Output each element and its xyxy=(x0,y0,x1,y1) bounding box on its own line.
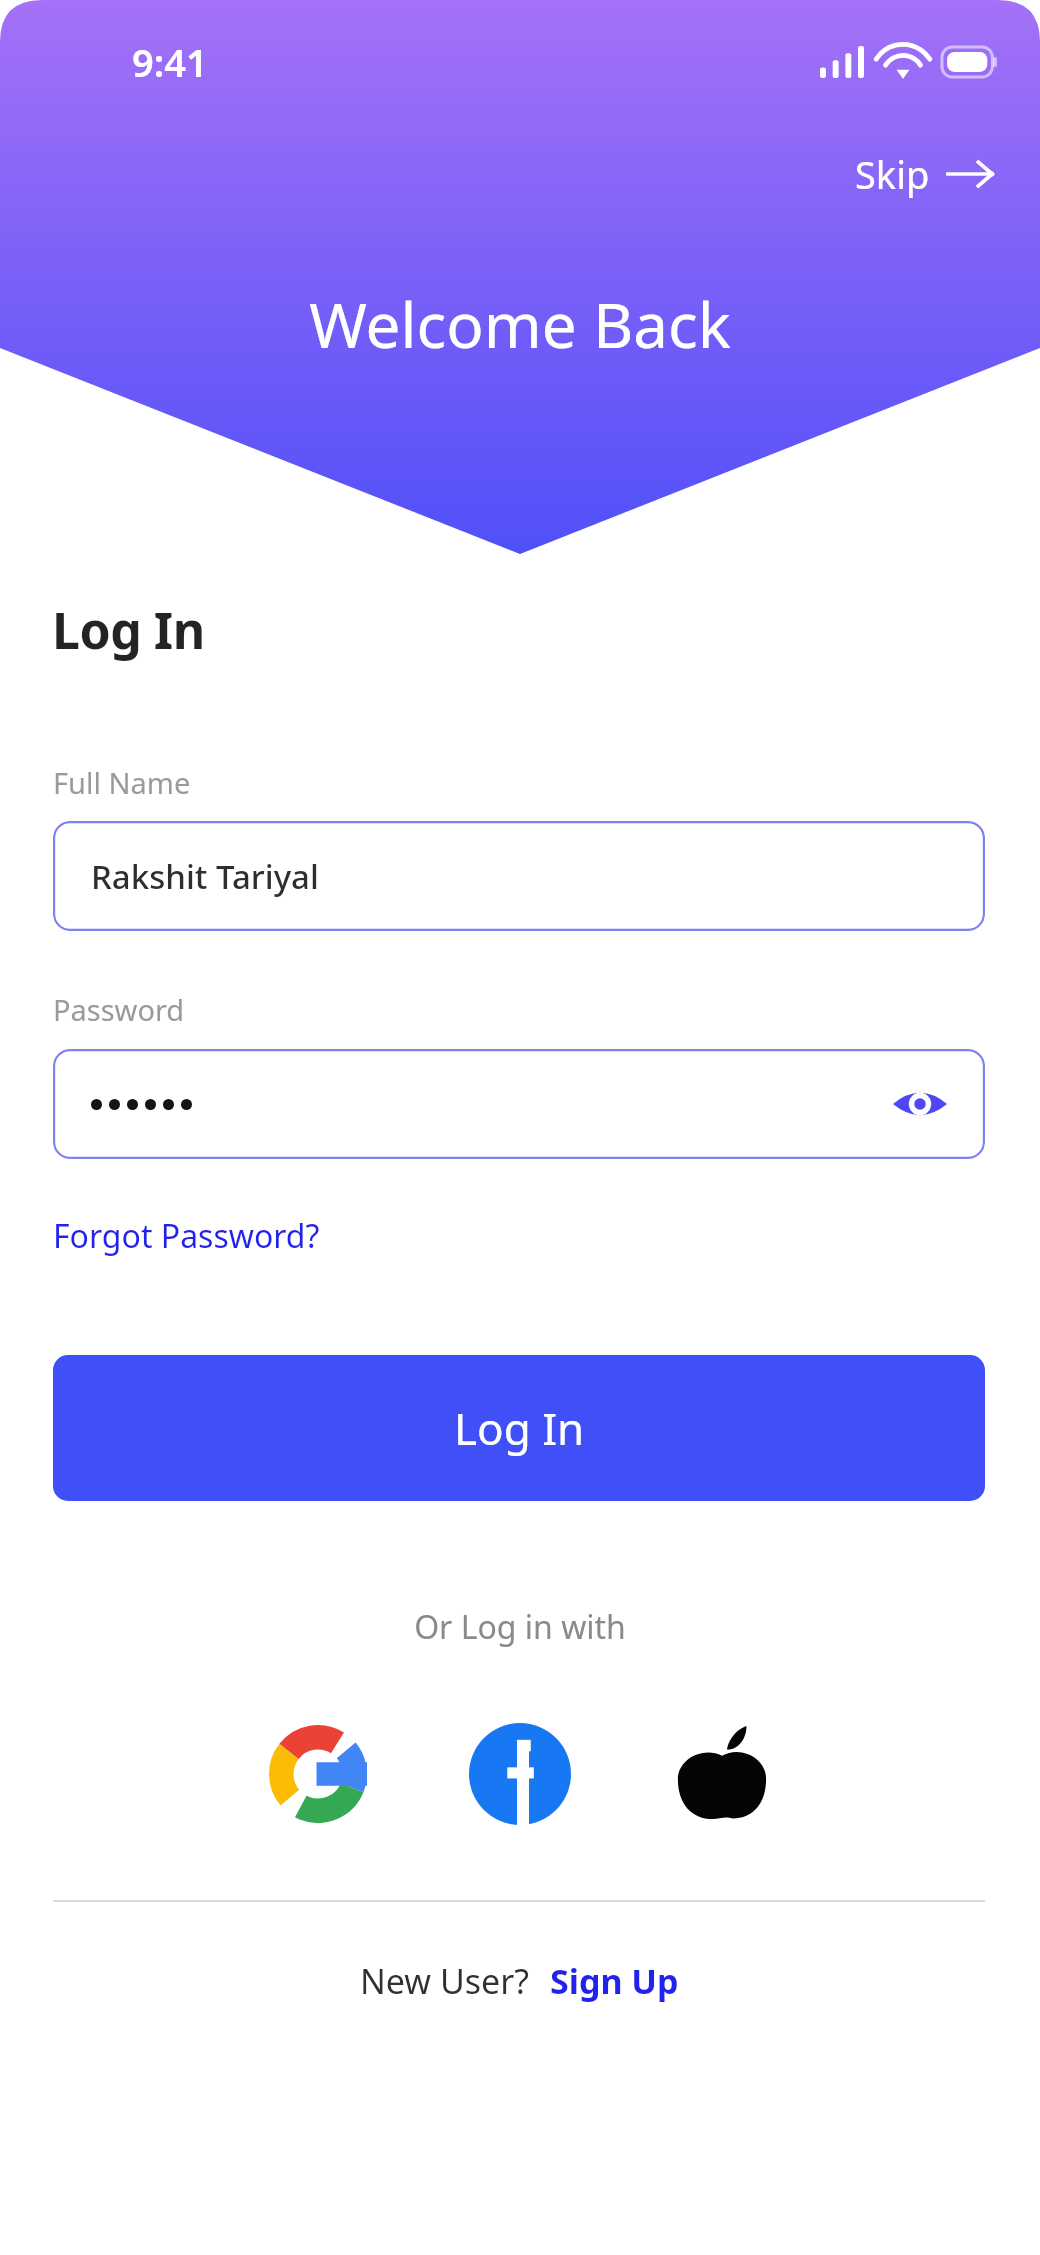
staticText: Forgot Password? xyxy=(53,1214,320,1258)
staticText: Welcome Back xyxy=(309,282,731,366)
button[interactable]: Sign in with Google xyxy=(256,1712,380,1836)
staticText: 9:41 xyxy=(132,36,208,88)
staticText: Full Name xyxy=(53,763,191,802)
staticText: Sign Up xyxy=(550,1958,679,2004)
button[interactable]: Skip xyxy=(849,140,1000,208)
button[interactable]: Show password xyxy=(883,1067,957,1141)
staticText: Skip xyxy=(855,148,930,200)
staticText: New User? xyxy=(360,1958,530,2004)
staticText: Or Log in with xyxy=(414,1605,626,1649)
button[interactable]: Forgot Password? xyxy=(49,1210,324,1262)
staticText: Password xyxy=(53,990,185,1029)
button[interactable]: Show password xyxy=(53,1049,985,1159)
staticText: Rakshit Tariyal xyxy=(91,854,319,899)
button[interactable]: Sign Up xyxy=(548,1954,681,2008)
button[interactable]: Sign in with Facebook xyxy=(458,1712,582,1836)
button[interactable]: Rakshit Tariyal xyxy=(53,821,985,931)
button[interactable]: Log In xyxy=(53,1355,985,1501)
staticText: Log In xyxy=(52,596,205,664)
button[interactable]: Sign in with Apple xyxy=(660,1712,784,1836)
staticText: Log In xyxy=(454,1398,585,1458)
